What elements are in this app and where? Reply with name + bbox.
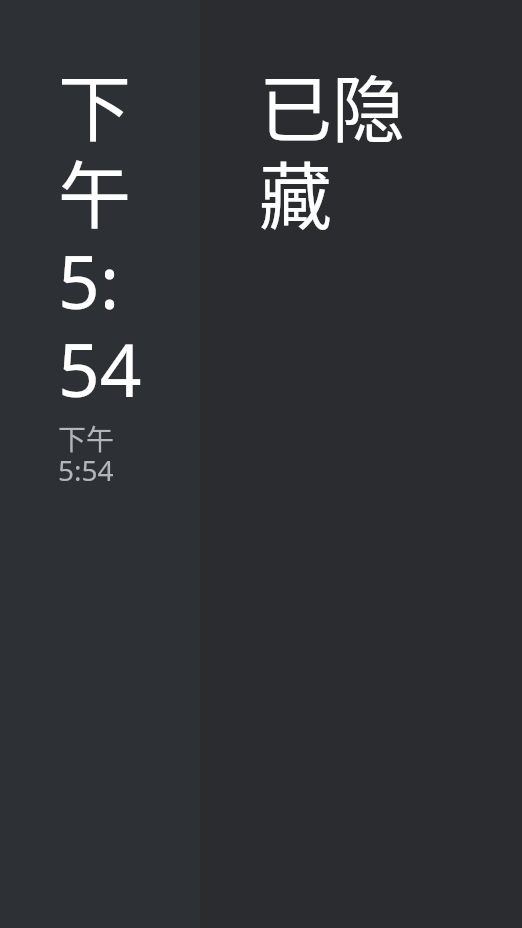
staticText: 已隐 藏: [259, 51, 414, 245]
button[interactable]: 已隐 藏: [200, 0, 522, 928]
staticText: 下 午 5: 54: [58, 50, 158, 418]
button[interactable]: Clock, 下午 5:54: [0, 0, 200, 928]
staticText: 下午 5:54: [58, 418, 120, 490]
